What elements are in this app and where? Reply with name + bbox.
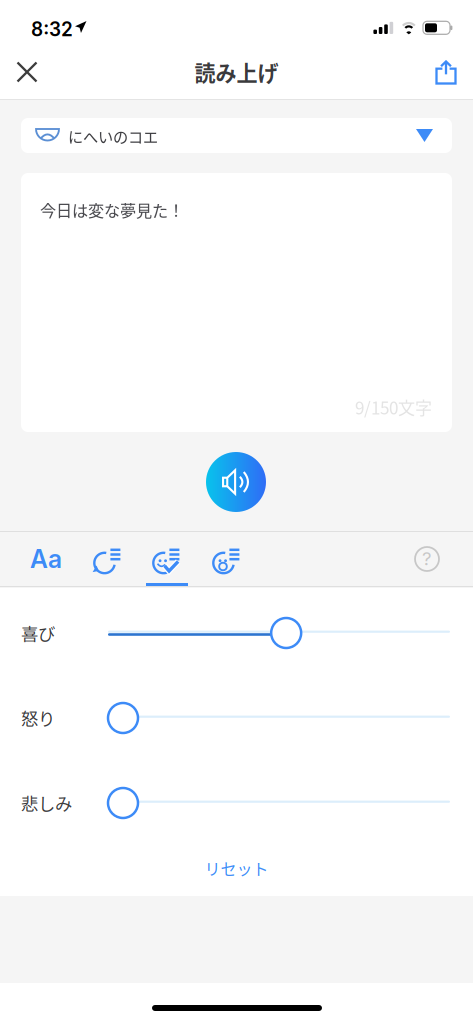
staticText: ? [422, 547, 432, 570]
staticText: にへいのコエ [68, 125, 158, 147]
button[interactable]: Pronunciation [199, 533, 255, 589]
button[interactable]: リセット [0, 851, 473, 885]
staticText: 悲しみ [21, 790, 72, 816]
staticText: Aa [30, 544, 62, 574]
button[interactable]: Speed [80, 533, 136, 589]
button[interactable]: Speak [206, 452, 266, 512]
button[interactable]: Text style [18, 531, 74, 587]
staticText: 今日は変な夢見た！ [40, 198, 184, 221]
button[interactable]: Close [0, 44, 54, 100]
button[interactable]: Emotion [139, 533, 195, 589]
button[interactable]: Share [419, 44, 473, 100]
staticText: 読み上げ [194, 57, 278, 87]
staticText: 喜び [21, 620, 55, 646]
button[interactable]: Help [400, 531, 454, 587]
staticText: リセット [204, 856, 268, 880]
staticText: 9/150文字 [355, 395, 432, 419]
button[interactable]: にへいのコエ [21, 118, 452, 153]
staticText: 8:32 [31, 18, 73, 41]
staticText: 怒り [21, 705, 55, 731]
